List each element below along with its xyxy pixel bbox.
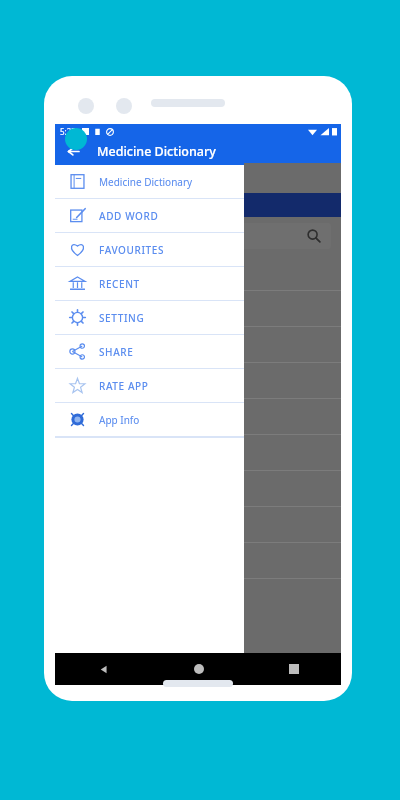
button[interactable]: SHARE <box>55 335 244 369</box>
staticText: App Info <box>99 413 140 427</box>
staticText: SETTING <box>99 311 145 325</box>
button[interactable]: RECENT <box>55 267 244 301</box>
button[interactable]: SETTING <box>55 301 244 335</box>
staticText: Lamivudine (Zidovudine) <box>71 198 198 213</box>
button[interactable]: FAVOURITES <box>55 233 244 267</box>
staticText: WORD OF THE DAY <box>71 171 170 186</box>
staticText: Medicine Dictionary <box>99 175 193 189</box>
staticText: Lamivudine/Zidovudine <box>71 374 193 389</box>
staticText: 5:22 <box>60 126 76 137</box>
staticText: SHARE <box>99 345 134 359</box>
button[interactable]: Back <box>61 139 85 163</box>
button[interactable]: RATE APP <box>55 369 244 403</box>
button[interactable]: Recent apps <box>246 653 341 685</box>
staticText: ADD WORD <box>99 209 159 223</box>
button[interactable]: Medicine Dictionary <box>55 165 244 199</box>
staticText: FAVOURITES <box>99 243 165 257</box>
staticText: Medicine Dictionary <box>97 143 216 160</box>
staticText: RECENT <box>99 277 140 291</box>
button[interactable]: Home <box>151 653 246 685</box>
button[interactable]: App Info <box>55 403 244 437</box>
button[interactable]: Back <box>55 653 151 685</box>
button[interactable]: ADD WORD <box>55 199 244 233</box>
staticText: RATE APP <box>99 379 149 393</box>
staticText: Lamivudine <box>71 338 132 353</box>
